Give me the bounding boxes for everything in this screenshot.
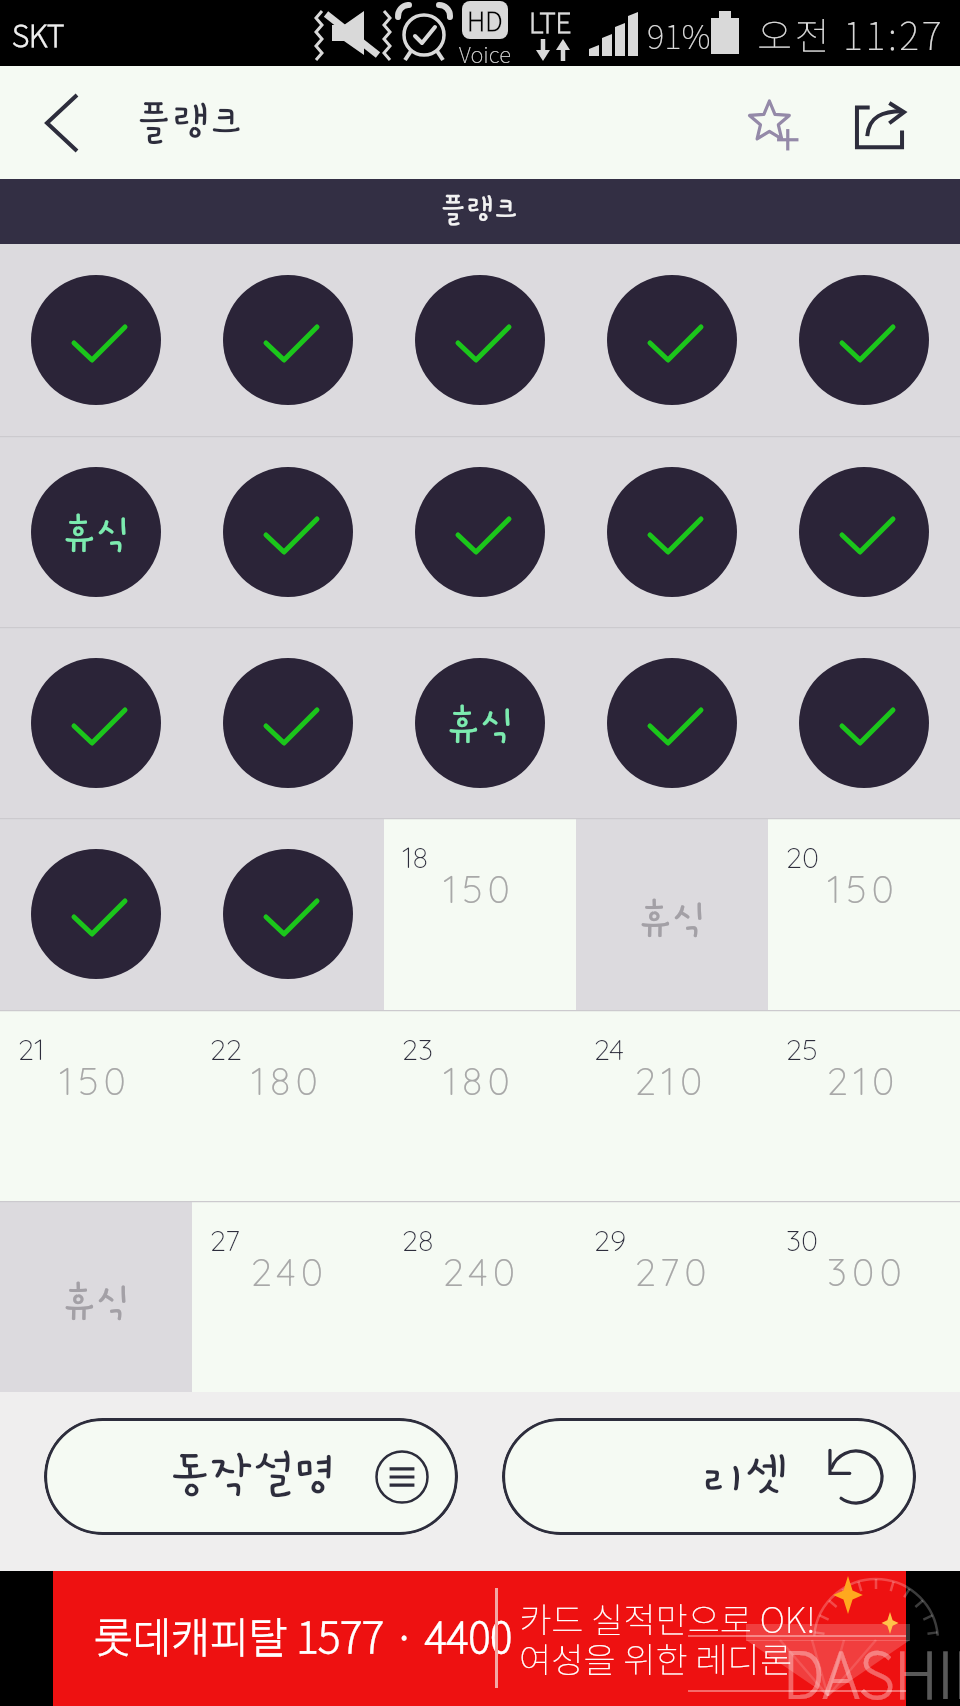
staticText: 휴식 — [61, 1281, 132, 1325]
button[interactable]: 휴식 — [0, 436, 192, 627]
staticText: 휴식 — [61, 513, 132, 557]
staticText: 20 — [786, 839, 819, 875]
button[interactable] — [576, 627, 768, 818]
button[interactable]: 22 — [192, 1010, 384, 1201]
staticText: 롯데캐피탈 1577 · 4400 — [94, 1604, 513, 1665]
button[interactable]: 동작설명 — [44, 1418, 458, 1535]
staticText: 21 — [18, 1031, 45, 1067]
staticText: 플랭크 — [136, 100, 245, 145]
button[interactable]: 21 — [0, 1010, 192, 1201]
button[interactable]: 휴식 — [576, 818, 768, 1010]
staticText: 210 — [635, 1057, 708, 1105]
staticText: LTE — [529, 1, 572, 42]
button[interactable]: 29 — [576, 1201, 768, 1392]
button[interactable]: 휴식 — [384, 627, 576, 818]
button[interactable]: 30 — [768, 1201, 960, 1392]
staticText: 23 — [402, 1031, 433, 1067]
staticText: 22 — [210, 1031, 242, 1067]
button[interactable] — [576, 244, 768, 436]
button[interactable] — [192, 818, 384, 1010]
button[interactable]: 24 — [576, 1010, 768, 1201]
staticText: 리셋 — [703, 1449, 787, 1501]
button[interactable] — [192, 627, 384, 818]
staticText: 카드 실적만으로 OK! — [519, 1592, 816, 1643]
staticText: 150 — [827, 865, 900, 913]
staticText: Voice — [459, 37, 511, 65]
button[interactable]: 18 — [384, 818, 576, 1010]
button[interactable]: 27 — [192, 1201, 384, 1392]
staticText: 210 — [827, 1057, 900, 1105]
button[interactable]: 리셋 — [502, 1418, 916, 1535]
button[interactable] — [0, 818, 192, 1010]
button[interactable] — [768, 436, 960, 627]
button[interactable]: 25 — [768, 1010, 960, 1201]
staticText: 180 — [443, 1057, 516, 1105]
button[interactable] — [192, 244, 384, 436]
staticText: HD — [467, 1, 503, 39]
staticText: 25 — [786, 1031, 818, 1067]
staticText: 180 — [251, 1057, 324, 1105]
button[interactable]: Back — [0, 66, 124, 179]
staticText: 29 — [594, 1222, 627, 1258]
staticText: 150 — [443, 865, 516, 913]
staticText: 30 — [786, 1222, 819, 1258]
button[interactable] — [0, 627, 192, 818]
staticText: SKT — [12, 12, 65, 55]
staticText: 여성을 위한 레디론 — [519, 1632, 793, 1683]
staticText: 240 — [251, 1248, 329, 1296]
staticText: 270 — [635, 1248, 712, 1296]
button[interactable]: Share — [832, 66, 944, 179]
staticText: 동작설명 — [169, 1449, 337, 1501]
button[interactable]: 28 — [384, 1201, 576, 1392]
button[interactable]: 20 — [768, 818, 960, 1010]
staticText: 300 — [827, 1248, 908, 1296]
button[interactable]: Add to favorites — [720, 66, 832, 179]
button[interactable] — [384, 244, 576, 436]
staticText: 24 — [594, 1031, 625, 1067]
staticText: 240 — [443, 1248, 521, 1296]
button[interactable]: 휴식 — [0, 1201, 192, 1392]
button[interactable] — [768, 627, 960, 818]
staticText: 휴식 — [637, 898, 708, 942]
staticText: 플랭크 — [440, 193, 520, 226]
button[interactable] — [0, 244, 192, 436]
staticText: 28 — [402, 1222, 434, 1258]
button[interactable]: 23 — [384, 1010, 576, 1201]
staticText: 150 — [59, 1057, 132, 1105]
staticText: 91% — [647, 11, 711, 59]
staticText: DASHIN — [783, 1626, 960, 1706]
staticText: 27 — [210, 1222, 240, 1258]
button[interactable]: DASHIN — [53, 1571, 906, 1706]
staticText: 휴식 — [445, 704, 516, 748]
staticText: 오전 11:27 — [757, 6, 945, 61]
staticText: 18 — [402, 839, 429, 875]
button[interactable] — [576, 436, 768, 627]
button[interactable] — [384, 436, 576, 627]
button[interactable] — [768, 244, 960, 436]
button[interactable] — [192, 436, 384, 627]
